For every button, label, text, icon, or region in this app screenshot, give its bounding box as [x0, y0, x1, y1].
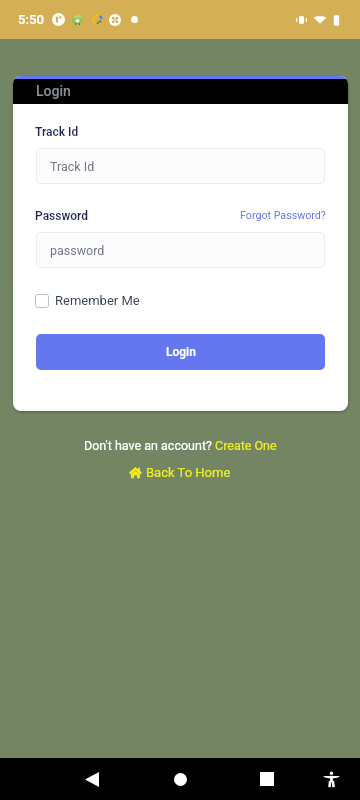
staticText: password [50, 243, 105, 258]
button[interactable]: Create One [215, 438, 277, 453]
staticText: Track Id [50, 159, 95, 174]
staticText: Forgot Password? [240, 209, 326, 222]
button[interactable]: Forgot Password? [240, 209, 326, 222]
staticText: Password [35, 209, 89, 223]
button[interactable]: Recents [252, 764, 282, 794]
staticText: Login [36, 83, 71, 99]
staticText: Remember Me [55, 293, 140, 308]
staticText: Back To Home [146, 465, 231, 480]
button[interactable]: Back [77, 764, 107, 794]
button[interactable]: Back To Home [129, 465, 231, 480]
button[interactable]: Accessibility [318, 766, 344, 792]
button[interactable]: Home [165, 764, 195, 794]
staticText: Track Id [35, 125, 79, 139]
button[interactable]: Login [36, 334, 325, 370]
button[interactable]: Track Id [36, 148, 325, 184]
staticText: 5:50 [18, 12, 44, 27]
staticText: Login [166, 345, 196, 359]
staticText: Create One [215, 438, 277, 453]
button[interactable]: password [36, 232, 325, 268]
button[interactable]: Remember Me [35, 293, 140, 308]
staticText: Don't have an account? [84, 438, 215, 453]
